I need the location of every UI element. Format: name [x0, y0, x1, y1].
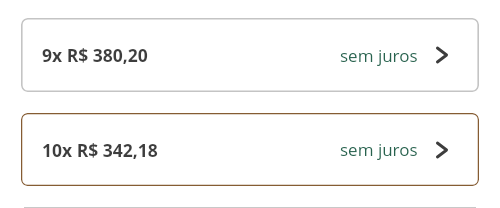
staticText: sem juros	[340, 138, 418, 161]
other: Ver detalhes	[431, 44, 453, 66]
button[interactable]: 10x R$ 342,18	[21, 113, 479, 186]
staticText: sem juros	[340, 44, 418, 67]
staticText: 9x R$ 380,20	[42, 43, 148, 67]
button[interactable]: 9x R$ 380,20	[21, 18, 479, 92]
other: Ver detalhes	[431, 139, 453, 161]
staticText: 10x R$ 342,18	[42, 138, 158, 162]
